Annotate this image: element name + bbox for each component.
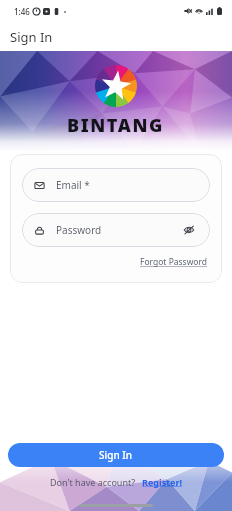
staticText: 1:46 bbox=[14, 6, 30, 17]
staticText: Forgot Password bbox=[140, 256, 208, 268]
button[interactable]: Sign In bbox=[8, 443, 224, 467]
staticText: Register! bbox=[142, 476, 183, 488]
staticText: Password bbox=[56, 223, 102, 237]
staticText: Sign In bbox=[10, 28, 53, 46]
button[interactable]: Password bbox=[22, 213, 210, 247]
button[interactable]: Register! bbox=[142, 476, 183, 488]
staticText: BINTANG bbox=[67, 113, 165, 138]
button[interactable]: Email * bbox=[22, 168, 210, 202]
staticText: Sign In bbox=[99, 448, 133, 462]
button[interactable]: Forgot Password bbox=[138, 255, 210, 269]
staticText: Don't have account? bbox=[50, 476, 136, 488]
button[interactable]: Show password bbox=[180, 221, 198, 239]
staticText: Email * bbox=[56, 178, 90, 192]
